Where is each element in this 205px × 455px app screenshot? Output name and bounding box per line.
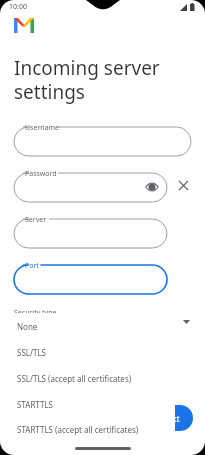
button[interactable]: None (8, 313, 175, 339)
button[interactable]: Open dropdown (180, 316, 192, 328)
staticText: Port (25, 261, 39, 271)
button[interactable]: STARTTLS (8, 391, 175, 417)
staticText: STARTTLS (accept all certificates) (17, 424, 139, 435)
button[interactable]: STARTTLS (accept all certificates) (8, 417, 175, 442)
staticText: STARTTLS (17, 399, 54, 410)
button[interactable]: Server (14, 214, 167, 248)
staticText: Next (160, 412, 180, 424)
staticText: SSL/TLS (accept all certificates) (17, 373, 132, 384)
button[interactable]: SSL/TLS (accept all certificates) (8, 365, 175, 391)
staticText: Password (25, 169, 57, 179)
staticText: Server (25, 215, 47, 225)
button[interactable]: Port (14, 260, 167, 294)
button[interactable]: SSL/TLS (8, 339, 175, 365)
staticText: SSL/TLS (17, 347, 46, 358)
staticText: 10:00 (9, 2, 27, 12)
staticText: None (17, 321, 38, 332)
staticText: Incoming server settings (14, 55, 160, 104)
button[interactable]: Clear (175, 177, 191, 193)
staticText: Security type (14, 308, 57, 318)
button[interactable]: Password (14, 168, 167, 202)
button[interactable]: Next (147, 405, 193, 431)
button[interactable]: Username (14, 122, 191, 156)
staticText: Username (25, 123, 60, 133)
button[interactable]: Show password (145, 180, 159, 194)
